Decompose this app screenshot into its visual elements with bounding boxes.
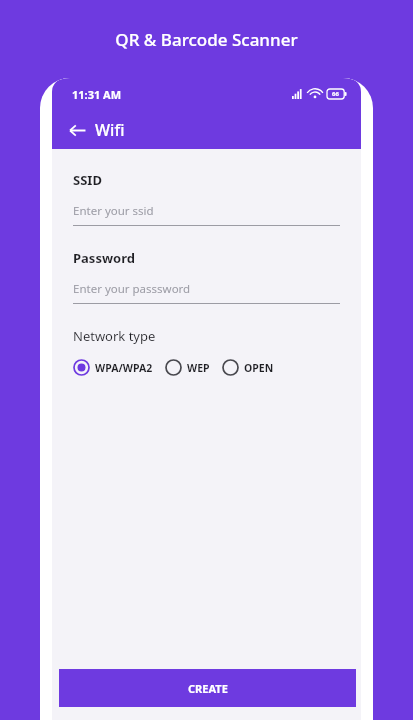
staticText: WPA/WPA2 — [95, 361, 153, 375]
staticText: CREATE — [188, 681, 228, 696]
button[interactable]: WPA/WPA2 — [73, 359, 153, 376]
staticText: OPEN — [244, 361, 274, 375]
staticText: QR & Barcode Scanner — [115, 28, 298, 51]
staticText: Wifi — [95, 119, 125, 141]
staticText: WEP — [187, 361, 210, 375]
staticText: Network type — [73, 327, 156, 345]
button[interactable]: Enter your ssid — [73, 203, 340, 226]
staticText: Password — [73, 249, 135, 267]
button[interactable]: CREATE — [59, 669, 356, 707]
staticText: SSID — [73, 171, 102, 189]
staticText: 66 — [332, 90, 339, 98]
staticText: Enter your ssid — [73, 203, 154, 219]
staticText: Enter your passsword — [73, 281, 191, 297]
staticText: 11:31 AM — [72, 87, 122, 102]
button[interactable]: Back — [64, 117, 90, 143]
button[interactable]: Enter your passsword — [73, 281, 340, 304]
button[interactable]: OPEN — [222, 359, 274, 376]
button[interactable]: WEP — [165, 359, 210, 376]
